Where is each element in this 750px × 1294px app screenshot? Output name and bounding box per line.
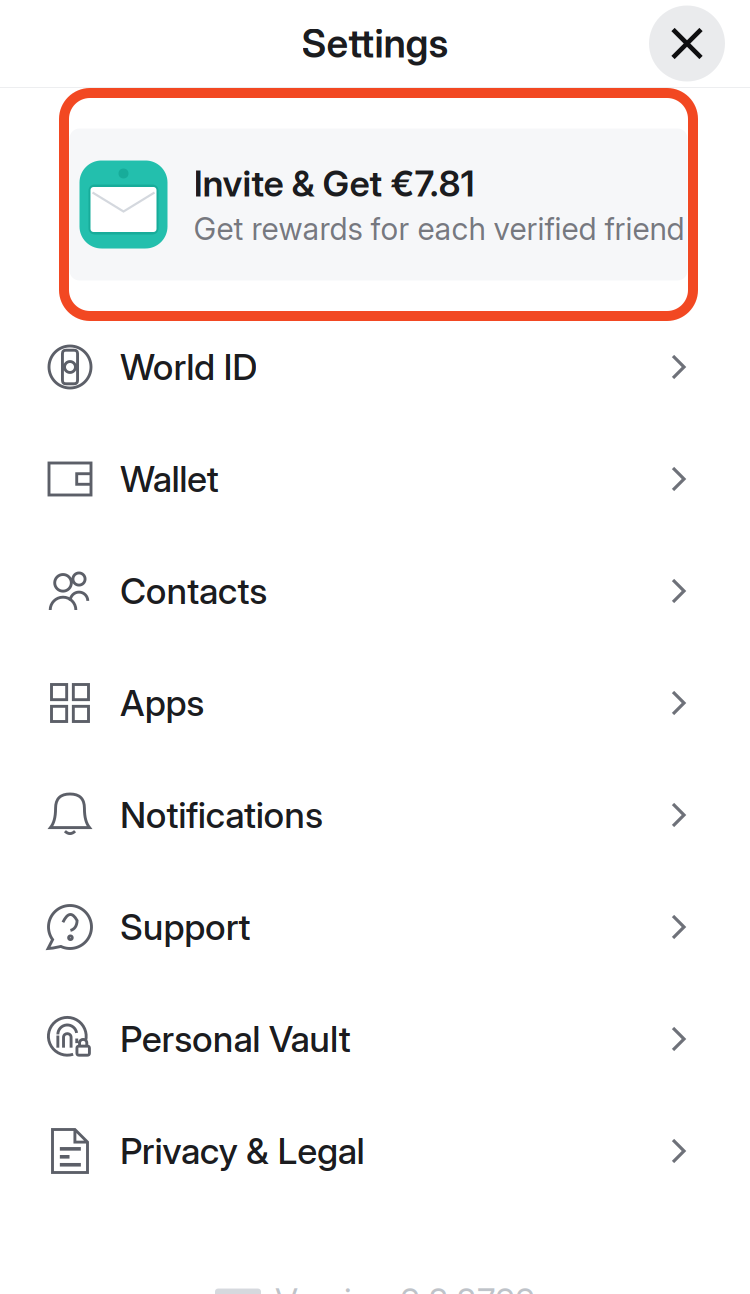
staticText: Notifications [120, 794, 323, 836]
staticText: Contacts [120, 570, 267, 612]
button[interactable]: Wallet [0, 423, 750, 535]
staticText: Privacy & Legal [120, 1130, 364, 1172]
button[interactable]: Personal Vault [0, 983, 750, 1095]
button[interactable]: World ID [0, 311, 750, 423]
button[interactable]: Close [645, 1, 729, 85]
staticText: Settings [301, 21, 448, 66]
button[interactable]: Invite & Get €7.81 [0, 88, 750, 311]
button[interactable]: Contacts [0, 535, 750, 647]
staticText: Get rewards for each verified friend [193, 211, 684, 247]
staticText: Invite & Get €7.81 [193, 162, 474, 205]
button[interactable]: Notifications [0, 759, 750, 871]
button[interactable]: Privacy & Legal [0, 1095, 750, 1207]
staticText: Wallet [120, 458, 219, 500]
staticText: Support [120, 906, 250, 948]
staticText: Personal Vault [120, 1018, 351, 1060]
staticText: World ID [120, 346, 257, 388]
staticText: Apps [120, 682, 204, 724]
button[interactable]: Apps [0, 647, 750, 759]
staticText: Version 2.8.8722 [275, 1281, 535, 1294]
button[interactable]: Support [0, 871, 750, 983]
